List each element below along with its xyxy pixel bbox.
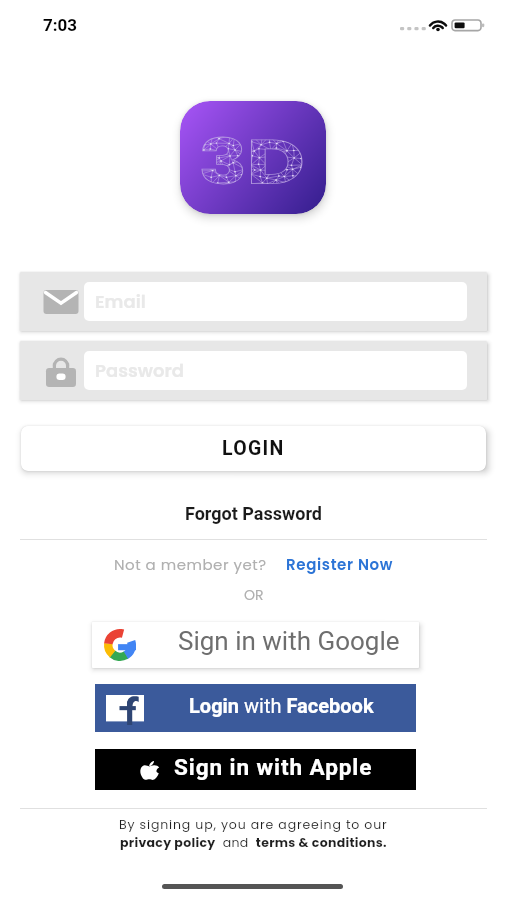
staticText: Login with Facebook	[189, 694, 374, 717]
staticText: Forgot Password	[185, 503, 322, 524]
staticText: OR	[244, 585, 264, 605]
staticText: Not a member yet?	[114, 554, 267, 575]
button[interactable]: Forgot Password	[0, 498, 507, 528]
button[interactable]: LOGIN	[21, 426, 486, 471]
staticText: 7:03	[43, 15, 78, 35]
staticText: Email	[95, 289, 146, 314]
button[interactable]: Password	[20, 341, 487, 400]
staticText: privacy policy and terms & conditions.	[120, 834, 387, 851]
button[interactable]: Sign in with Google	[92, 622, 419, 668]
button[interactable]: Login with Facebook	[95, 684, 416, 732]
button[interactable]: Sign in with Apple	[95, 749, 416, 790]
staticText: Sign in with Apple	[174, 754, 373, 780]
staticText: By signing up, you are agreeing to our	[119, 816, 388, 833]
button[interactable]: Email	[20, 272, 487, 331]
other: 3D app logo	[180, 101, 326, 214]
button[interactable]: Register Now	[286, 554, 394, 575]
staticText: Register Now	[286, 554, 394, 575]
staticText: Sign in with Google	[178, 626, 400, 656]
staticText: Password	[95, 358, 184, 383]
staticText: LOGIN	[222, 437, 285, 460]
